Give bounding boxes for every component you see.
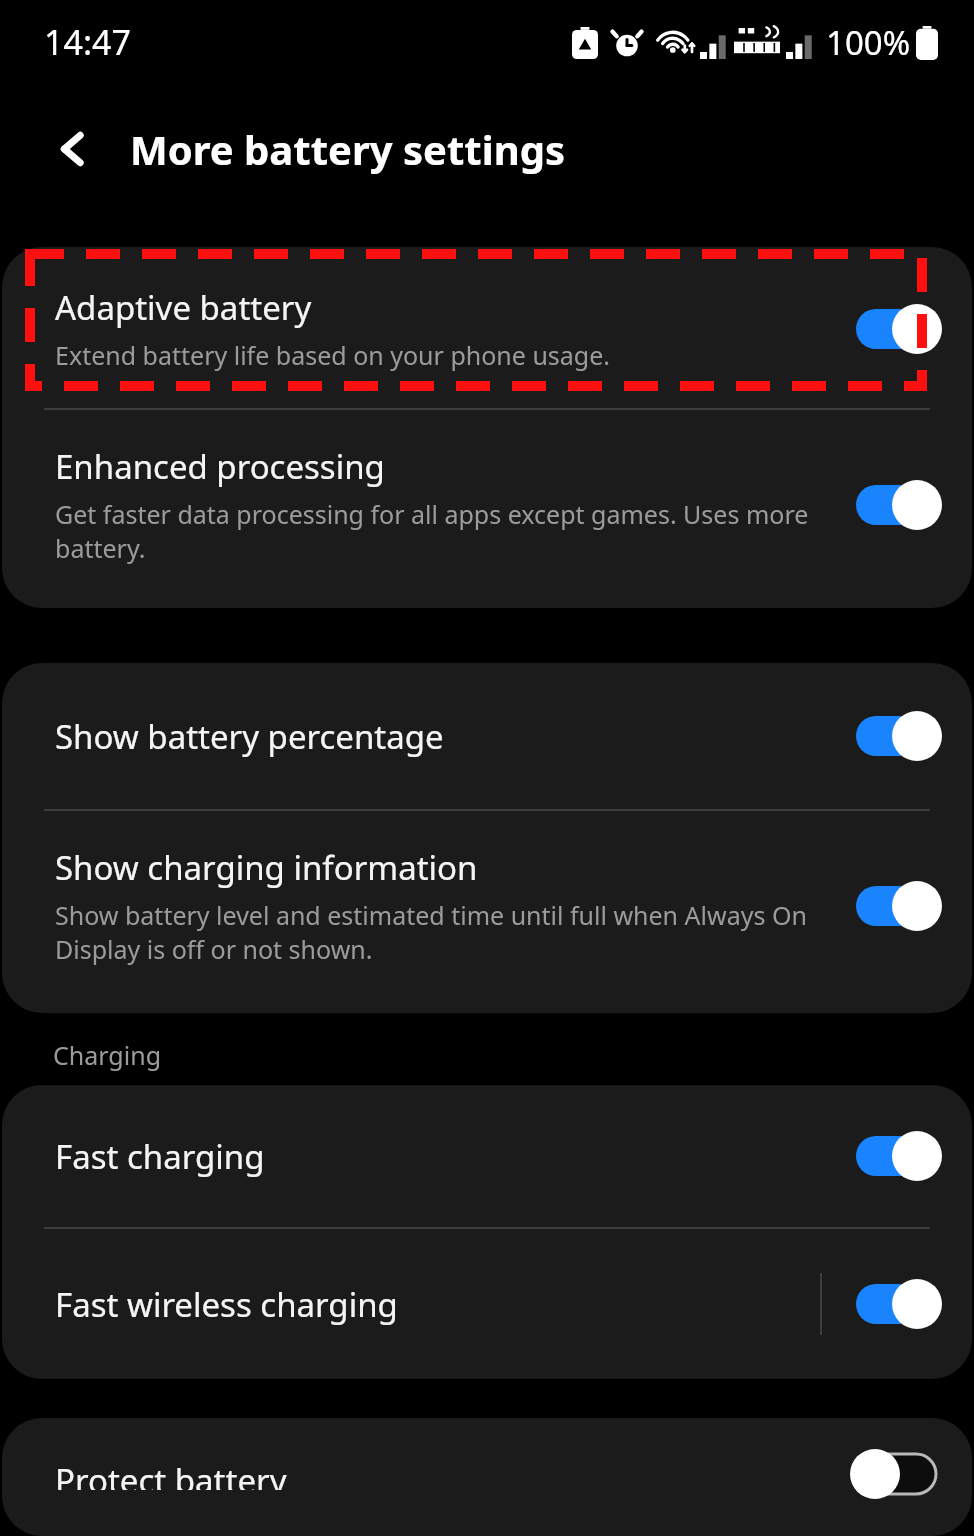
staticText: Fast charging (55, 1134, 265, 1179)
button[interactable]: Show battery percentage (856, 709, 942, 763)
staticText: 14:47 (44, 19, 131, 65)
button[interactable]: Show charging information (2, 811, 972, 1013)
staticText: More battery settings (130, 122, 566, 176)
staticText: Show charging information (55, 845, 478, 890)
button[interactable]: Fast wireless charging (856, 1277, 942, 1331)
staticText: Get faster data processing for all apps … (55, 497, 830, 566)
staticText: Enhanced processing (55, 444, 385, 489)
button[interactable]: Fast wireless charging (2, 1229, 972, 1379)
button[interactable]: Show battery percentage (2, 663, 972, 809)
button[interactable]: Enhanced processing (856, 478, 942, 532)
button[interactable]: Show charging information (856, 879, 942, 933)
button[interactable]: Fast charging (856, 1129, 942, 1183)
staticText: Adaptive battery (55, 285, 312, 330)
button[interactable]: Enhanced processing (2, 410, 972, 608)
button[interactable]: Protect battery (2, 1418, 972, 1536)
button[interactable]: Adaptive battery (2, 247, 972, 408)
staticText: 100% (826, 20, 911, 65)
staticText: Charging (53, 1038, 162, 1072)
staticText: Protect battery (55, 1458, 287, 1490)
button[interactable]: Back (36, 112, 110, 186)
staticText: Show battery level and estimated time un… (55, 898, 830, 967)
staticText: Extend battery life based on your phone … (55, 338, 611, 372)
button[interactable]: Protect battery (856, 1458, 942, 1490)
staticText: Fast wireless charging (55, 1282, 398, 1327)
button[interactable]: Fast charging (2, 1085, 972, 1227)
button[interactable]: Adaptive battery (856, 302, 942, 356)
staticText: Show battery percentage (55, 714, 444, 759)
